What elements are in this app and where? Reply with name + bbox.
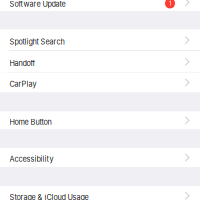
button[interactable]: CarPlay xyxy=(0,72,200,92)
staticText: CarPlay xyxy=(9,80,36,89)
staticText: Storage & iCloud Usage xyxy=(9,193,88,200)
staticText: Software Update xyxy=(9,0,65,8)
button[interactable]: Handoff xyxy=(0,51,200,72)
button[interactable]: Software Update xyxy=(0,0,200,11)
staticText: Home Button xyxy=(9,118,51,126)
staticText: Handoff xyxy=(9,59,35,68)
staticText: 1 xyxy=(169,0,171,7)
button[interactable]: Storage & iCloud Usage xyxy=(0,186,200,200)
staticText: Accessibility xyxy=(9,155,53,164)
staticText: Spotlight Search xyxy=(9,37,64,46)
button[interactable]: Spotlight Search xyxy=(0,29,200,51)
button[interactable]: Accessibility xyxy=(0,148,200,167)
button[interactable]: Home Button xyxy=(0,111,200,129)
